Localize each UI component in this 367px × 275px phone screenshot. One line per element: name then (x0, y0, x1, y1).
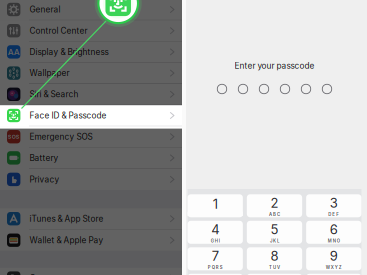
staticText: T U V (269, 265, 280, 270)
staticText: Control Center (29, 26, 87, 36)
staticText: M N O (328, 238, 340, 244)
staticText: Display & Brightness (29, 47, 108, 57)
staticText: 8 (270, 248, 278, 264)
button[interactable]: 2 (247, 194, 302, 217)
button[interactable]: Wallpaper (0, 63, 182, 84)
staticText: 5 (270, 222, 278, 237)
staticText: G H I (211, 238, 220, 244)
button[interactable]: 7 (188, 247, 243, 270)
staticText: Enter your passcode (234, 61, 314, 71)
button[interactable]: iTunes & App Store (0, 208, 182, 230)
button[interactable]: SOS (0, 126, 182, 148)
button[interactable]: Camera (0, 268, 182, 275)
staticText: A B C (269, 212, 280, 217)
staticText: Siri & Search (29, 89, 78, 99)
button[interactable]: AA (0, 42, 182, 63)
staticText: 1 (213, 196, 218, 212)
button[interactable]: General (0, 0, 182, 20)
staticText: iTunes & App Store (29, 214, 103, 224)
staticText: General (29, 4, 60, 14)
staticText: Wallet & Apple Pay (29, 235, 103, 245)
button[interactable]: 1 (188, 194, 243, 217)
staticText: 2 (270, 195, 278, 211)
staticText: Face ID & Passcode (29, 110, 106, 120)
staticText: Emergency SOS (29, 132, 92, 142)
staticText: Privacy (29, 174, 59, 184)
button[interactable]: Wallet & Apple Pay (0, 230, 182, 251)
staticText: W X Y Z (326, 265, 342, 270)
button[interactable] (306, 274, 361, 275)
staticText: P Q R S (208, 265, 223, 270)
button[interactable] (188, 274, 243, 275)
staticText: AA (8, 47, 20, 57)
staticText: Camera (29, 273, 60, 275)
button[interactable]: Siri & Search (0, 84, 182, 105)
button[interactable]: 5 (247, 221, 302, 244)
button[interactable]: 9 (306, 247, 361, 270)
staticText: Wallpaper (29, 68, 69, 78)
button[interactable]: Control Center (0, 20, 182, 42)
button[interactable]: Face ID & Passcode (0, 105, 182, 126)
staticText: J K L (270, 238, 279, 244)
staticText: SOS (8, 133, 20, 140)
staticText: 4 (211, 222, 219, 237)
button[interactable]: 8 (247, 247, 302, 270)
staticText: 9 (330, 248, 338, 264)
staticText: 7 (212, 248, 219, 264)
button[interactable]: 4 (188, 221, 243, 244)
button[interactable]: 3 (306, 194, 361, 217)
button[interactable]: 0 (247, 274, 302, 275)
button[interactable]: Privacy (0, 169, 182, 190)
button[interactable]: 6 (306, 221, 361, 244)
button[interactable]: Battery (0, 148, 182, 169)
staticText: D E F (328, 212, 339, 217)
staticText: 3 (330, 195, 338, 211)
staticText: Battery (29, 153, 58, 163)
staticText: 6 (330, 222, 338, 237)
